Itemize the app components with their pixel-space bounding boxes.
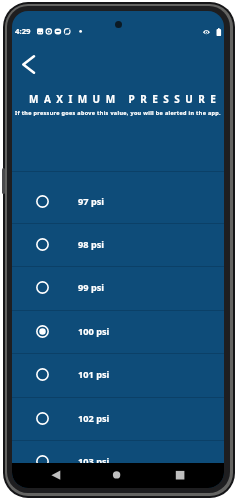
- button[interactable]: 98 psi: [12, 223, 224, 266]
- button[interactable]: 101 psi: [12, 353, 224, 396]
- staticText: 98 psi: [78, 238, 105, 251]
- staticText: 100 psi: [78, 325, 110, 338]
- staticText: 103 psi: [78, 455, 110, 468]
- staticText: 101 psi: [78, 368, 110, 381]
- button[interactable]: 99 psi: [12, 266, 224, 309]
- button[interactable]: 103 psi: [12, 440, 224, 483]
- button[interactable]: 97 psi: [12, 180, 224, 223]
- staticText: MAXIMUM PRESSURE: [29, 92, 222, 106]
- staticText: 99 psi: [78, 281, 105, 294]
- button[interactable]: Back: [42, 463, 224, 488]
- staticText: If the pressure goes above this value, y…: [12, 109, 224, 116]
- button[interactable]: Back: [22, 51, 50, 79]
- button[interactable]: 102 psi: [12, 397, 224, 440]
- button[interactable]: 100 psi: [12, 310, 224, 353]
- staticText: 102 psi: [78, 412, 110, 425]
- staticText: 4:29: [15, 26, 31, 37]
- staticText: 97 psi: [78, 195, 105, 208]
